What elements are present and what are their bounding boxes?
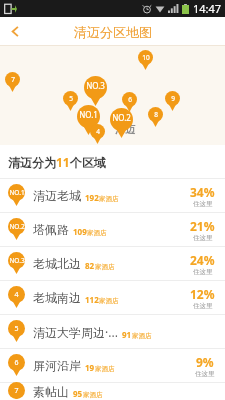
staticText: 清迈分区地图: [74, 24, 152, 40]
button[interactable]: 清迈: [0, 46, 225, 145]
staticText: NO.3: [86, 80, 105, 91]
staticText: 5: [14, 324, 19, 334]
button[interactable]: 区域 7: [5, 72, 20, 92]
staticText: 家酒店: [99, 297, 119, 305]
button[interactable]: 5: [0, 315, 225, 348]
button[interactable]: NO.1: [0, 179, 225, 212]
staticText: 家酒店: [99, 195, 119, 203]
staticText: 清迈分为: [8, 155, 56, 170]
staticText: 家酒店: [87, 229, 107, 237]
staticText: 清迈: [115, 123, 135, 136]
staticText: 82: [85, 260, 95, 271]
staticText: 9%: [196, 354, 214, 370]
button[interactable]: 区域 8: [148, 107, 163, 127]
staticText: NO.2: [112, 112, 131, 123]
staticText: 6: [128, 95, 132, 104]
staticText: 塔佩路: [33, 222, 69, 237]
staticText: 4: [14, 290, 19, 300]
staticText: 住这里: [193, 302, 213, 310]
staticText: 192: [85, 192, 99, 203]
staticText: 95: [73, 388, 83, 399]
staticText: 12%: [190, 286, 215, 302]
button[interactable]: 区域 NO.3: [84, 76, 107, 106]
staticText: 11: [56, 154, 70, 170]
staticText: 素帖山: [33, 384, 69, 399]
button[interactable]: 4: [0, 281, 225, 314]
staticText: 91: [122, 329, 132, 340]
staticText: NO.2: [9, 222, 25, 231]
button[interactable]: 区域 5: [63, 91, 78, 111]
staticText: 21%: [190, 218, 215, 234]
staticText: 8: [154, 110, 158, 119]
staticText: NO.3: [9, 256, 25, 265]
staticText: 19: [85, 362, 95, 373]
button[interactable]: 区域 6: [122, 92, 137, 112]
staticText: 屏河沿岸: [33, 358, 81, 373]
staticText: 9: [171, 94, 175, 103]
button[interactable]: 7: [0, 383, 225, 400]
staticText: 7: [14, 386, 19, 396]
staticText: 老城南边: [33, 290, 81, 305]
staticText: 家酒店: [95, 263, 115, 271]
staticText: 老城北边: [33, 256, 81, 271]
staticText: 家酒店: [95, 365, 115, 373]
staticText: NO.1: [9, 188, 25, 197]
staticText: 家酒店: [83, 391, 103, 399]
staticText: 住这里: [193, 234, 213, 242]
button[interactable]: 区域 NO.2: [110, 108, 133, 138]
button[interactable]: 区域 NO.1: [77, 105, 100, 135]
staticText: NO.1: [79, 109, 98, 120]
staticText: 109: [73, 226, 87, 237]
staticText: 34%: [190, 184, 215, 200]
staticText: 24%: [190, 252, 215, 268]
staticText: 清迈大学周边·...: [33, 324, 118, 340]
button[interactable]: 区域 4: [90, 124, 105, 144]
button[interactable]: NO.3: [0, 247, 225, 280]
staticText: 住这里: [193, 200, 213, 208]
staticText: 5: [69, 94, 73, 103]
button[interactable]: 区域 10: [138, 50, 153, 70]
button[interactable]: Back: [0, 17, 30, 46]
staticText: 6: [14, 358, 19, 368]
staticText: 7: [11, 75, 15, 84]
staticText: 清迈老城: [33, 188, 81, 203]
staticText: 住这里: [193, 268, 213, 276]
staticText: 住这里: [195, 370, 215, 378]
staticText: 112: [85, 294, 99, 305]
staticText: 4: [96, 127, 100, 136]
button[interactable]: 区域 9: [165, 91, 180, 111]
staticText: 10: [142, 53, 150, 62]
staticText: 家酒店: [132, 332, 152, 340]
staticText: 14:47: [193, 1, 222, 16]
staticText: 个区域: [70, 155, 106, 170]
button[interactable]: NO.2: [0, 213, 225, 246]
button[interactable]: 6: [0, 349, 225, 382]
